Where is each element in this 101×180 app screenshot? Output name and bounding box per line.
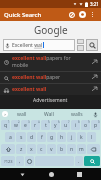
- button[interactable]: Emoji: [25, 156, 34, 166]
- button[interactable]: excellent wall: [3, 86, 98, 93]
- button[interactable]: y: [51, 120, 60, 130]
- button[interactable]: Option: [77, 39, 84, 44]
- staticText: wall: [17, 111, 27, 118]
- staticText: 4: [38, 120, 40, 124]
- button[interactable]: p: [91, 120, 100, 130]
- button[interactable]: walls: [63, 109, 91, 119]
- staticText: w: [14, 122, 18, 129]
- button[interactable]: .: [75, 156, 83, 166]
- button[interactable]: Backspace: [87, 144, 100, 154]
- staticText: r: [34, 122, 37, 129]
- button[interactable]: Settings: [77, 9, 88, 20]
- staticText: p: [94, 122, 98, 129]
- staticText: k: [80, 134, 83, 141]
- button[interactable]: Home: [45, 168, 57, 180]
- staticText: 9: [88, 120, 90, 124]
- button[interactable]: excellent wallpaper: [3, 74, 98, 81]
- button[interactable]: c: [37, 144, 46, 154]
- button[interactable]: Insert suggestion: [91, 86, 98, 93]
- button[interactable]: e: [21, 120, 30, 130]
- button[interactable]: Insert suggestion: [91, 74, 98, 81]
- button[interactable]: Search: [84, 156, 100, 166]
- button[interactable]: a: [5, 132, 15, 142]
- staticText: y: [54, 122, 57, 129]
- staticText: 8: [78, 120, 80, 124]
- button[interactable]: w: [11, 120, 20, 130]
- button[interactable]: x: [27, 144, 36, 154]
- staticText: g: [50, 134, 54, 141]
- button[interactable]: o: [81, 120, 90, 130]
- button[interactable]: Search: [86, 39, 98, 51]
- button[interactable]: i: [71, 120, 80, 130]
- staticText: a: [9, 134, 12, 141]
- button[interactable]: Recents: [73, 168, 85, 180]
- staticText: o: [84, 122, 88, 129]
- button[interactable]: k: [77, 132, 86, 142]
- button[interactable]: g: [47, 132, 56, 142]
- button[interactable]: excellent wallpapers for: [3, 55, 98, 69]
- button[interactable]: ,: [16, 156, 24, 166]
- staticText: z: [20, 146, 23, 153]
- staticText: v: [50, 146, 53, 153]
- staticText: Advertisement: [33, 97, 68, 104]
- button[interactable]: b: [57, 144, 66, 154]
- button[interactable]: r: [31, 120, 40, 130]
- staticText: j: [71, 134, 73, 141]
- staticText: 7: [68, 120, 70, 124]
- button[interactable]: Refresh: [66, 9, 77, 20]
- button[interactable]: d: [27, 132, 36, 142]
- button[interactable]: q: [1, 120, 10, 130]
- staticText: f: [41, 134, 43, 141]
- button[interactable]: l: [87, 132, 96, 142]
- staticText: Google: [34, 23, 68, 37]
- button[interactable]: u: [61, 120, 70, 130]
- staticText: n: [70, 146, 74, 153]
- staticText: 6: [58, 120, 60, 124]
- button[interactable]: Option: [77, 45, 84, 51]
- staticText: u: [64, 122, 68, 129]
- button[interactable]: v: [47, 144, 56, 154]
- button[interactable]: Shift: [1, 144, 15, 154]
- button[interactable]: f: [37, 132, 46, 142]
- staticText: excellent wallpapers for: [12, 55, 71, 62]
- staticText: Wall: [44, 111, 54, 118]
- staticText: mobile: [12, 62, 29, 69]
- staticText: t: [45, 122, 47, 129]
- button[interactable]: s: [16, 132, 26, 142]
- button[interactable]: m: [77, 144, 86, 154]
- button[interactable]: Insert suggestion: [91, 59, 98, 66]
- staticText: m: [79, 146, 84, 153]
- staticText: 0: [98, 120, 100, 124]
- staticText: d: [30, 134, 34, 141]
- button[interactable]: Expand: [2, 111, 8, 117]
- staticText: e: [24, 122, 27, 129]
- staticText: q: [4, 122, 8, 129]
- button[interactable]: Wall: [35, 109, 63, 119]
- staticText: >: [4, 112, 7, 117]
- staticText: 5: [48, 120, 50, 124]
- staticText: excellent wallpaper: [12, 74, 61, 81]
- button[interactable]: Back: [16, 168, 28, 180]
- staticText: ,: [19, 158, 21, 165]
- button[interactable]: Excellent wal: [5, 39, 73, 51]
- staticText: walls: [71, 111, 83, 118]
- staticText: c: [40, 146, 43, 153]
- button[interactable]: wall: [8, 109, 35, 119]
- button[interactable]: More options: [88, 10, 97, 19]
- button[interactable]: Voice input: [91, 110, 99, 118]
- staticText: 3: [28, 120, 30, 124]
- staticText: s: [20, 134, 23, 141]
- button[interactable]: t: [41, 120, 50, 130]
- button[interactable]: n: [67, 144, 76, 154]
- staticText: .: [78, 158, 80, 165]
- button[interactable]: j: [67, 132, 76, 142]
- staticText: Excellent wal: [12, 42, 43, 49]
- staticText: excellent wall: [12, 86, 47, 93]
- staticText: 3:21: [90, 1, 99, 7]
- staticText: i: [75, 122, 77, 129]
- button[interactable]: z: [16, 144, 26, 154]
- staticText: 1: [8, 120, 10, 124]
- button[interactable]: ?123: [1, 156, 15, 166]
- button[interactable]: h: [57, 132, 66, 142]
